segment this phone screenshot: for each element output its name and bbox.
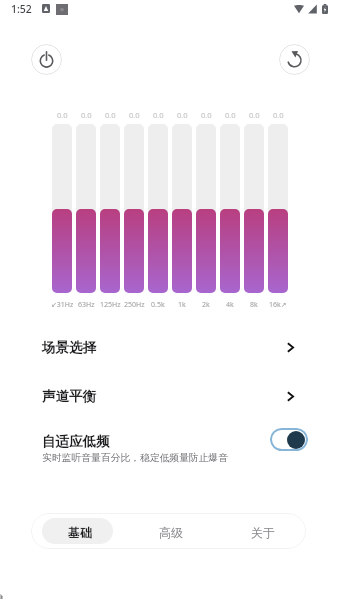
button[interactable]: Reset [279, 44, 310, 75]
button[interactable]: 基础 [42, 518, 113, 544]
staticText: 0.0 [105, 110, 116, 120]
button[interactable]: Band 3 [100, 124, 120, 293]
button[interactable]: Band 7 [196, 124, 216, 293]
staticText: 0.0 [249, 110, 260, 120]
staticText: 4k [226, 300, 234, 310]
staticText: 0.5k [151, 300, 165, 310]
staticText: 8k [250, 300, 258, 310]
button[interactable]: Band 5 [148, 124, 168, 293]
button[interactable]: Power [31, 44, 62, 75]
staticText: 关于 [251, 525, 275, 540]
button[interactable]: 自适应低频 [0, 426, 338, 472]
staticText: 0.0 [177, 110, 188, 120]
staticText: 0.0 [273, 110, 284, 120]
staticText: 63Hz [78, 300, 95, 310]
button[interactable]: 声道平衡 [0, 379, 338, 413]
staticText: 自适应低频 [42, 433, 110, 450]
button[interactable]: Band 2 [76, 124, 96, 293]
staticText: 0.0 [153, 110, 164, 120]
staticText: 高级 [159, 525, 183, 540]
button[interactable]: Band 10 [268, 124, 288, 293]
staticText: 0.0 [57, 110, 68, 120]
staticText: 1k [178, 300, 186, 310]
button[interactable]: Band 4 [124, 124, 144, 293]
staticText: 实时监听音量百分比，稳定低频量防止爆音 [42, 452, 229, 464]
button[interactable]: Band 8 [220, 124, 240, 293]
button[interactable]: Band 9 [244, 124, 264, 293]
button[interactable]: 关于 [225, 518, 297, 544]
button[interactable]: Band 1 [52, 124, 72, 293]
button[interactable]: 高级 [133, 518, 205, 544]
button[interactable]: 场景选择 [0, 330, 338, 364]
staticText: 1:52 [11, 2, 32, 16]
staticText: 声道平衡 [42, 388, 96, 405]
button[interactable]: Band 6 [172, 124, 192, 293]
staticText: 0.0 [201, 110, 212, 120]
staticText: 0.0 [225, 110, 236, 120]
staticText: 125Hz [100, 300, 121, 310]
staticText: 16k↗ [269, 300, 287, 310]
staticText: 2k [202, 300, 210, 310]
staticText: 场景选择 [42, 339, 96, 356]
staticText: 基础 [68, 525, 92, 540]
staticText: 0.0 [81, 110, 92, 120]
staticText: ↙31Hz [51, 300, 74, 310]
staticText: 250Hz [124, 300, 145, 310]
staticText: 0.0 [129, 110, 140, 120]
